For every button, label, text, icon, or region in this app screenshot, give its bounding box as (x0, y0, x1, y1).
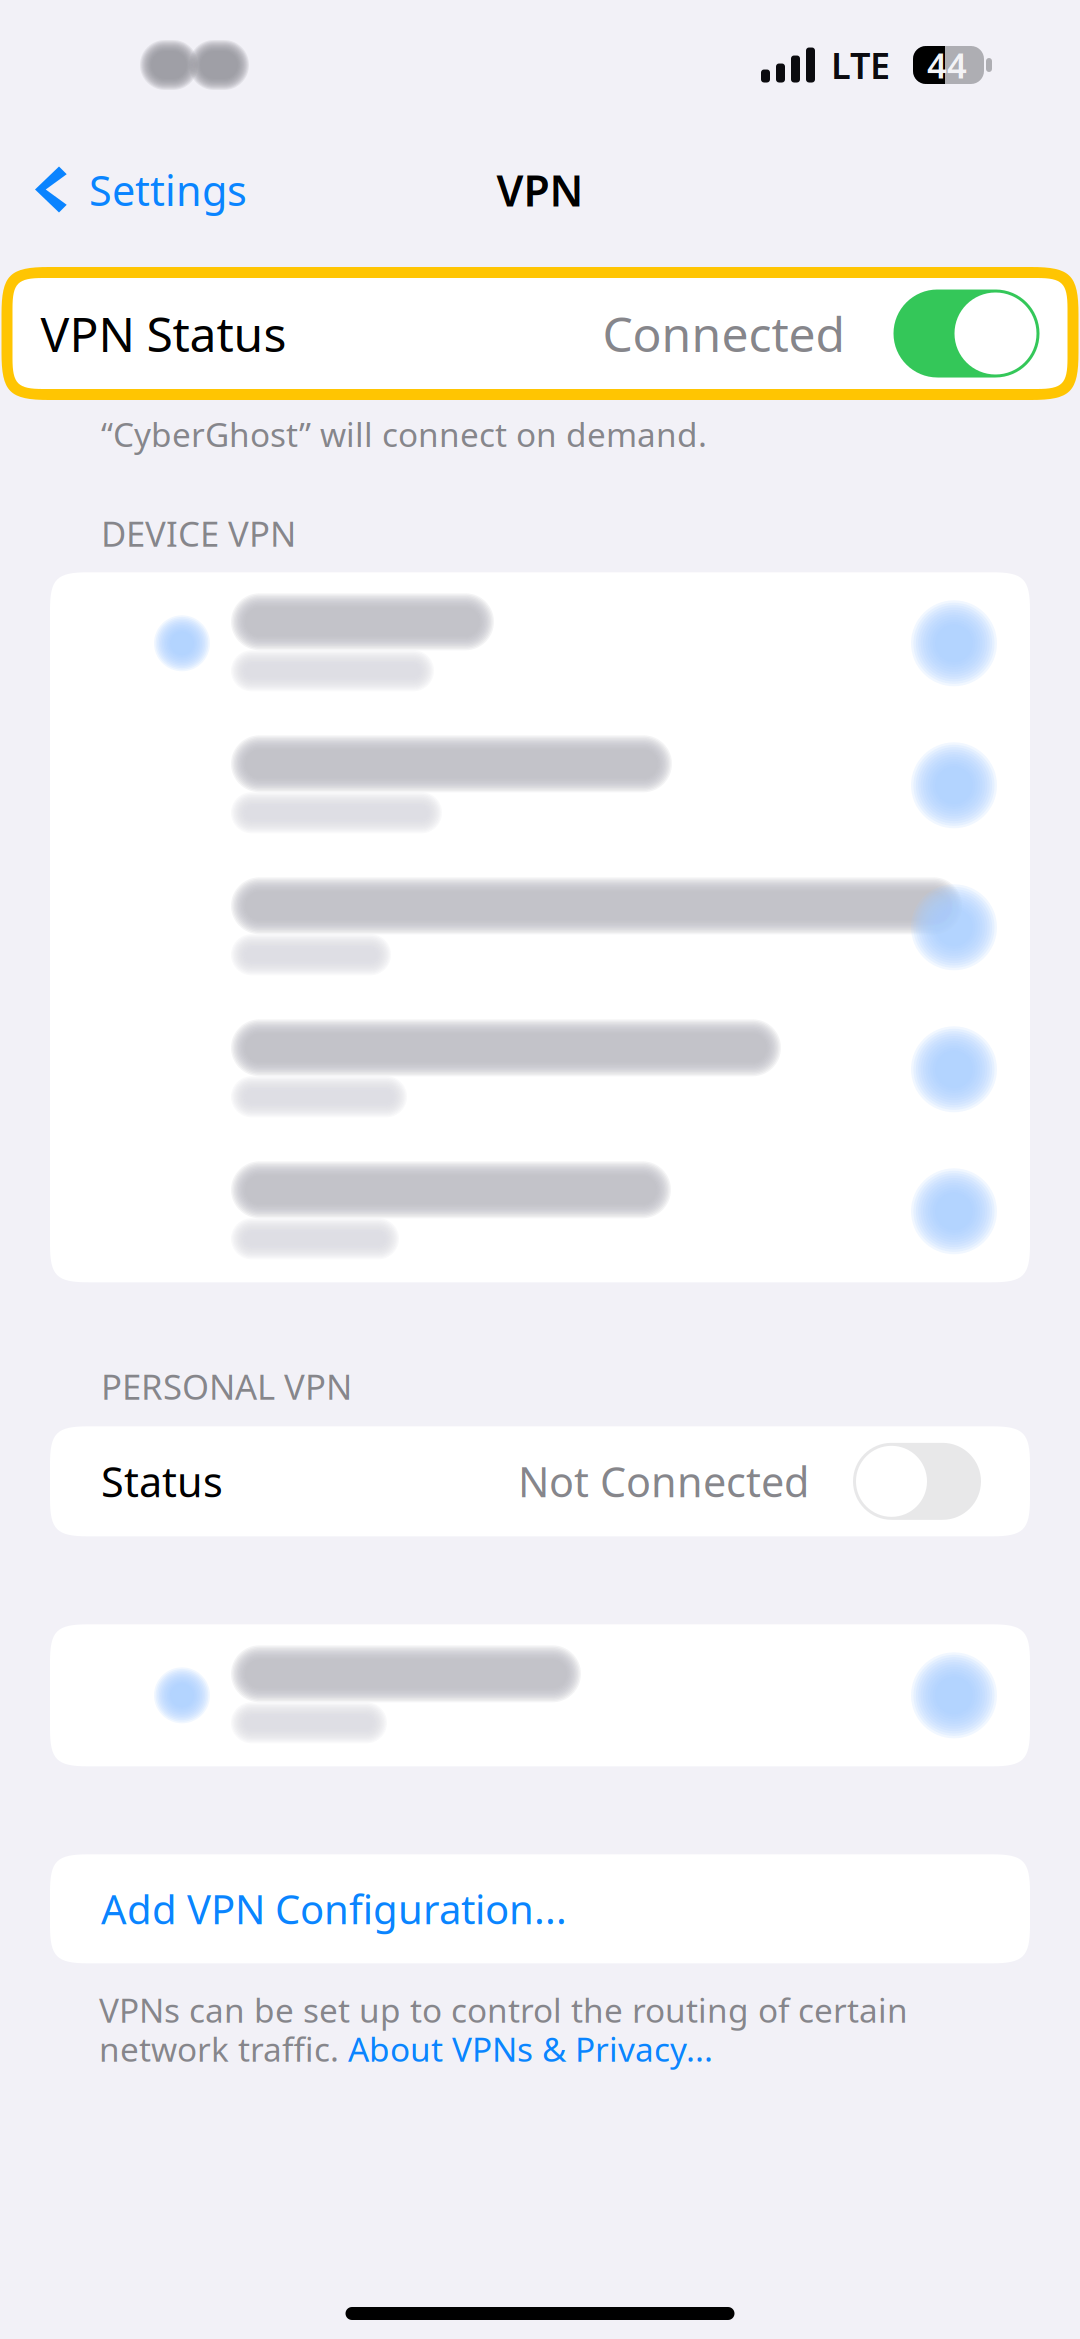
button[interactable]: VPN configuration (50, 1624, 1030, 1766)
button[interactable]: VPN configuration (50, 714, 1030, 856)
button[interactable]: VPN configuration (50, 998, 1030, 1140)
staticText: LTE (831, 41, 890, 89)
button[interactable]: Add VPN Configuration... (50, 1854, 1030, 1963)
button[interactable]: Status (50, 1426, 1030, 1536)
staticText: network traffic. (99, 2027, 348, 2071)
staticText: VPNs can be set up to control the routin… (99, 1988, 908, 2032)
staticText: VPN (496, 162, 583, 218)
staticText: DEVICE VPN (101, 510, 296, 556)
staticText: About VPNs & Privacy... (348, 2027, 713, 2071)
button[interactable]: VPN configuration (50, 856, 1030, 998)
staticText: 44 (927, 42, 967, 88)
staticText: Connected (602, 302, 845, 365)
staticText: Not Connected (518, 1454, 809, 1509)
staticText: Status (101, 1454, 223, 1509)
button[interactable]: VPN Status (1, 250, 1078, 400)
button[interactable]: Settings (0, 140, 267, 240)
staticText: “CyberGhost” will connect on demand. (101, 412, 707, 456)
staticText: VPN Status (40, 302, 286, 365)
staticText: Settings (89, 163, 247, 217)
button[interactable]: VPN configuration (50, 572, 1030, 714)
button[interactable]: About VPNs & Privacy... (348, 2027, 713, 2071)
staticText: Add VPN Configuration... (101, 1882, 567, 1935)
button[interactable]: VPN configuration (50, 1140, 1030, 1282)
staticText: PERSONAL VPN (101, 1363, 352, 1409)
